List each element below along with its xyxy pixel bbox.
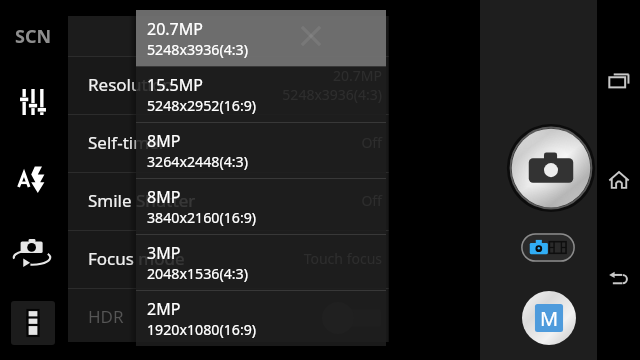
button[interactable]: Scene settings — [11, 80, 55, 124]
button[interactable]: Manual mode — [522, 291, 576, 345]
button[interactable]: SCN — [4, 16, 62, 56]
staticText: 3264x2448(4:3) — [147, 152, 248, 171]
button[interactable]: Photo video mode — [521, 233, 575, 262]
button[interactable]: HDR — [68, 289, 389, 346]
button[interactable]: Flash auto — [11, 156, 55, 200]
staticText: 2048x1536(4:3) — [147, 264, 248, 283]
staticText: 3840x2160(16:9) — [147, 208, 257, 227]
staticText: Touch focus — [303, 249, 382, 268]
staticText: 8MP — [147, 186, 181, 208]
staticText: Focus mode — [88, 247, 185, 270]
staticText: 20.7MP 5248x3936(4:3) — [282, 66, 382, 104]
staticText: HDR — [88, 305, 124, 328]
button[interactable]: Resolution — [68, 57, 389, 114]
staticText: 15.5MP — [147, 74, 203, 96]
button[interactable]: Self-timer — [68, 115, 389, 172]
button[interactable]: 3MP — [136, 234, 386, 290]
button[interactable]: 8MP — [136, 122, 386, 178]
button[interactable]: Shutter — [506, 123, 596, 213]
button[interactable]: 15.5MP — [136, 66, 386, 122]
button[interactable]: Home — [599, 160, 639, 200]
staticText: 5248x3936(4:3) — [147, 40, 248, 59]
button[interactable]: Back — [599, 258, 639, 298]
staticText: 3MP — [147, 242, 181, 264]
staticText: 8MP — [147, 130, 181, 152]
staticText: Self-timer — [88, 131, 166, 154]
button[interactable]: Focus mode — [68, 231, 389, 288]
staticText: Off — [361, 133, 382, 152]
button[interactable]: 8MP — [136, 178, 386, 234]
staticText: Resolution — [88, 73, 173, 96]
staticText: 20.7MP — [147, 18, 203, 40]
button[interactable]: Recent apps — [599, 61, 639, 101]
staticText: SCN — [15, 24, 52, 49]
staticText: Smile Shutter — [88, 189, 196, 212]
button[interactable]: Switch camera — [8, 227, 56, 275]
staticText: 5248x2952(16:9) — [147, 96, 257, 115]
button[interactable]: Smile Shutter — [68, 173, 389, 230]
staticText: Off — [361, 191, 382, 210]
staticText: 1920x1080(16:9) — [147, 320, 257, 339]
button[interactable]: 20.7MP — [136, 10, 386, 66]
staticText: M — [540, 305, 559, 332]
button[interactable]: 2MP — [136, 290, 386, 346]
button[interactable]: More options — [11, 301, 55, 345]
staticText: 2MP — [147, 298, 181, 320]
